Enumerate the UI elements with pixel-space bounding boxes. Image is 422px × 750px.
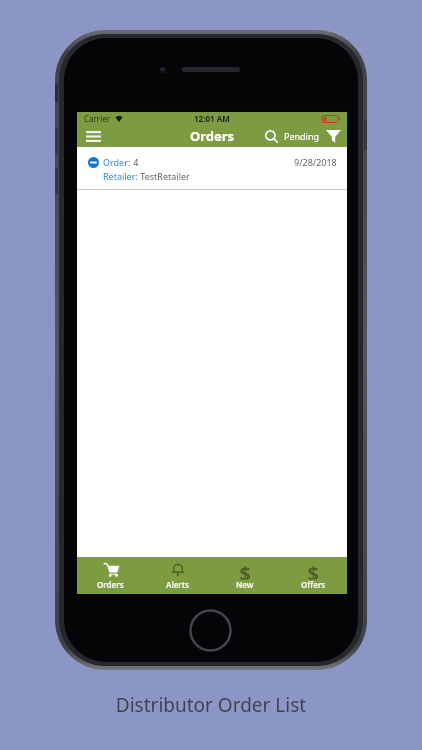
staticText: Retailer: <box>103 170 138 182</box>
button[interactable]: Alerts <box>144 557 211 594</box>
button[interactable]: $ <box>211 557 279 594</box>
button[interactable]: $ <box>279 557 347 594</box>
staticText: 9/28/2018 <box>294 156 337 168</box>
staticText: $ <box>308 560 319 579</box>
staticText: 12:01 AM <box>194 113 230 124</box>
staticText: TestRetailer <box>138 170 190 182</box>
staticText: $ <box>240 560 251 579</box>
staticText: Order: <box>103 156 131 168</box>
staticText: Alerts <box>166 579 189 590</box>
button[interactable] <box>264 129 278 143</box>
staticText: Pending <box>284 130 320 142</box>
button[interactable] <box>325 128 341 144</box>
button[interactable] <box>83 127 103 145</box>
staticText: 4 <box>131 156 139 168</box>
staticText: Orders <box>190 127 235 145</box>
staticText: Carrier <box>84 113 111 124</box>
button[interactable]: Order: <box>77 147 347 190</box>
button[interactable]: Pending <box>284 130 320 142</box>
staticText: New <box>236 579 254 590</box>
button[interactable]: Orders <box>77 557 144 594</box>
staticText: Orders <box>97 579 124 590</box>
staticText: Offers <box>301 579 326 590</box>
staticText: Distributor Order List <box>0 692 422 718</box>
